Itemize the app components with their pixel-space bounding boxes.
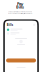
button[interactable] (6, 58, 36, 62)
staticText: Bills (7, 23, 13, 27)
staticText: Set up automatic payments and keep every… (8, 11, 32, 14)
staticText: Pay (17, 1, 23, 6)
staticText: Bills (16, 4, 24, 10)
